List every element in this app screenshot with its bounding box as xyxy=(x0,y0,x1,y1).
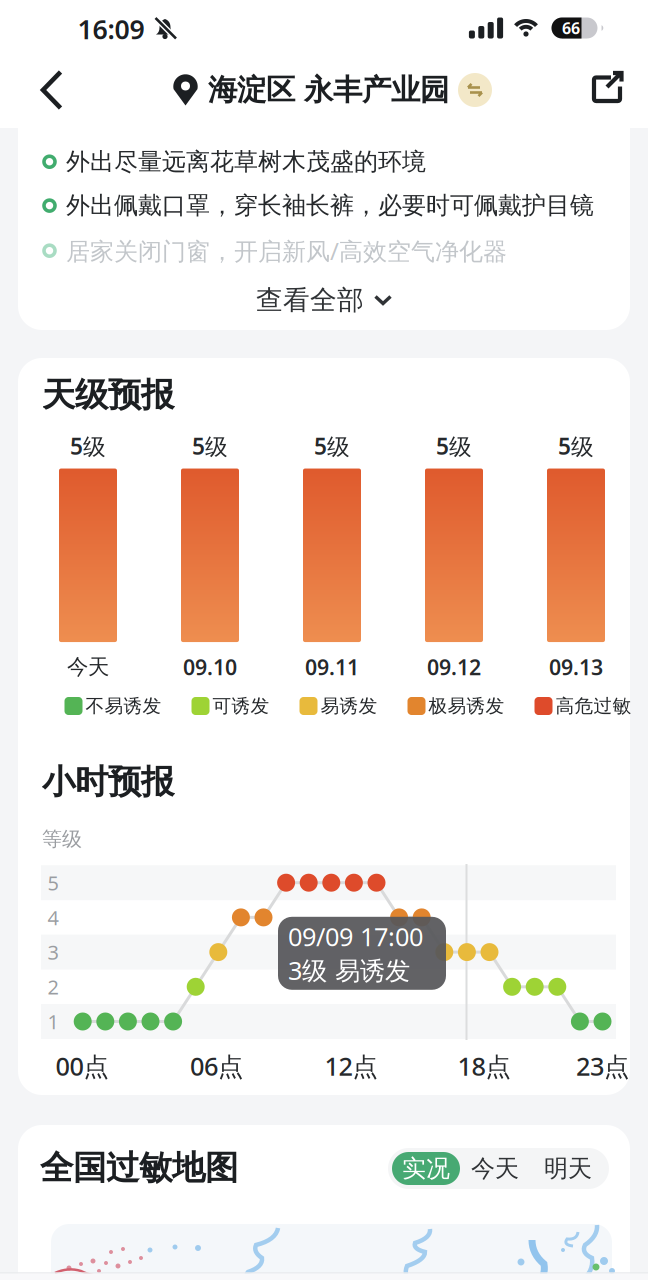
staticText: 66 xyxy=(562,17,580,39)
staticText: 等级 xyxy=(42,827,82,851)
staticText: 查看全部 xyxy=(256,284,364,316)
staticText: 09.11 xyxy=(305,653,359,681)
staticText: 16:09 xyxy=(77,11,144,47)
staticText: 5级 xyxy=(436,431,472,461)
staticText: 天级预报 xyxy=(42,374,174,415)
button[interactable]: 今天 xyxy=(460,1148,530,1189)
staticText: 海淀区 永丰产业园 xyxy=(208,72,449,108)
staticText: 09.10 xyxy=(183,653,237,681)
staticText: 外出尽量远离花草树木茂盛的环境 xyxy=(66,147,426,176)
staticText: 09/09 17:00 xyxy=(288,920,423,953)
staticText: 5级 xyxy=(558,431,594,461)
staticText: 5级 xyxy=(70,431,106,461)
staticText: 2 xyxy=(47,973,58,1000)
staticText: 06点 xyxy=(190,1049,243,1083)
staticText: 不易诱发 xyxy=(85,694,161,717)
button[interactable]: 查看全部 xyxy=(224,278,424,322)
staticText: 09.12 xyxy=(427,653,481,681)
staticText: 全国过敏地图 xyxy=(40,1147,238,1188)
staticText: 可诱发 xyxy=(212,694,269,717)
staticText: 1 xyxy=(47,1008,58,1035)
staticText: 小时预报 xyxy=(42,761,174,802)
staticText: 居家关闭门窗，开启新风/高效空气净化器 xyxy=(66,235,507,267)
button[interactable]: 切换城市 xyxy=(172,72,492,108)
staticText: 4 xyxy=(47,904,58,931)
staticText: 高危过敏 xyxy=(555,694,631,717)
button[interactable]: Back xyxy=(30,68,74,112)
staticText: 明天 xyxy=(544,1154,592,1183)
staticText: 18点 xyxy=(457,1049,510,1083)
staticText: 12点 xyxy=(324,1049,377,1083)
staticText: 实况 xyxy=(402,1154,450,1183)
staticText: 5 xyxy=(47,869,58,896)
staticText: 外出佩戴口罩，穿长袖长裤，必要时可佩戴护目镜 xyxy=(66,191,594,220)
staticText: 3级 易诱发 xyxy=(288,953,410,987)
staticText: 5级 xyxy=(192,431,228,461)
button[interactable]: 明天 xyxy=(533,1148,603,1189)
staticText: 09.13 xyxy=(549,653,603,681)
staticText: 5级 xyxy=(314,431,350,461)
button[interactable]: 实况 xyxy=(392,1152,460,1185)
staticText: 极易诱发 xyxy=(428,694,504,717)
button[interactable]: Share xyxy=(583,67,627,111)
staticText: 23点 xyxy=(576,1049,629,1083)
staticText: 易诱发 xyxy=(320,694,377,717)
staticText: 今天 xyxy=(471,1154,519,1183)
staticText: 3 xyxy=(47,939,58,965)
staticText: 今天 xyxy=(67,654,109,680)
staticText: 00点 xyxy=(55,1049,108,1083)
